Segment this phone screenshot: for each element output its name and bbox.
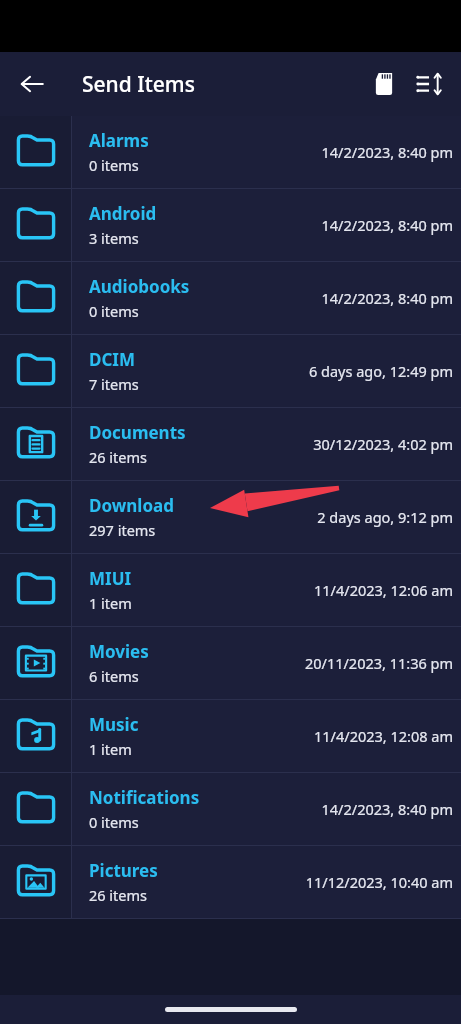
staticText: 14/2/2023, 8:40 pm (321, 288, 453, 308)
button[interactable]: Android (0, 189, 461, 261)
staticText: Notifications (89, 786, 200, 809)
staticText: Pictures (89, 859, 158, 882)
button[interactable]: SD card (361, 61, 407, 107)
staticText: Documents (89, 421, 186, 444)
button[interactable]: Pictures (0, 846, 461, 918)
button[interactable]: Back (10, 62, 54, 106)
staticText: 7 items (89, 374, 139, 394)
button[interactable]: Sort (407, 61, 453, 107)
button[interactable]: Documents (0, 408, 461, 480)
staticText: 14/2/2023, 8:40 pm (321, 799, 453, 819)
button[interactable]: Music (0, 700, 461, 772)
staticText: 3 items (89, 228, 139, 248)
staticText: 30/12/2023, 4:02 pm (313, 434, 453, 454)
staticText: 2 days ago, 9:12 pm (317, 507, 453, 527)
button[interactable]: Alarms (0, 116, 461, 188)
staticText: Download (89, 494, 174, 517)
staticText: 14/2/2023, 8:40 pm (321, 215, 453, 235)
button[interactable]: Download (0, 481, 461, 553)
staticText: Android (89, 202, 157, 225)
staticText: 20/11/2023, 11:36 pm (304, 653, 453, 673)
staticText: 6 items (89, 666, 139, 686)
staticText: 1 item (89, 739, 132, 759)
staticText: 11/12/2023, 10:40 am (305, 872, 453, 892)
staticText: 26 items (89, 447, 148, 467)
staticText: 297 items (89, 520, 156, 540)
staticText: Music (89, 713, 139, 736)
staticText: Audiobooks (89, 275, 190, 298)
staticText: Movies (89, 640, 149, 663)
staticText: 0 items (89, 812, 139, 832)
staticText: 0 items (89, 301, 139, 321)
staticText: Alarms (89, 129, 149, 152)
staticText: 14/2/2023, 8:40 pm (321, 142, 453, 162)
staticText: 0 items (89, 155, 139, 175)
button[interactable]: Notifications (0, 773, 461, 845)
button[interactable]: Movies (0, 627, 461, 699)
button[interactable]: MIUI (0, 554, 461, 626)
button[interactable]: DCIM (0, 335, 461, 407)
staticText: MIUI (89, 567, 132, 590)
staticText: 1 item (89, 593, 132, 613)
button[interactable]: Audiobooks (0, 262, 461, 334)
staticText: 11/4/2023, 12:06 am (313, 580, 453, 600)
staticText: Send Items (82, 70, 195, 99)
staticText: 6 days ago, 12:49 pm (308, 361, 453, 381)
staticText: 26 items (89, 885, 148, 905)
staticText: 11/4/2023, 12:08 am (313, 726, 453, 746)
staticText: DCIM (89, 348, 136, 371)
